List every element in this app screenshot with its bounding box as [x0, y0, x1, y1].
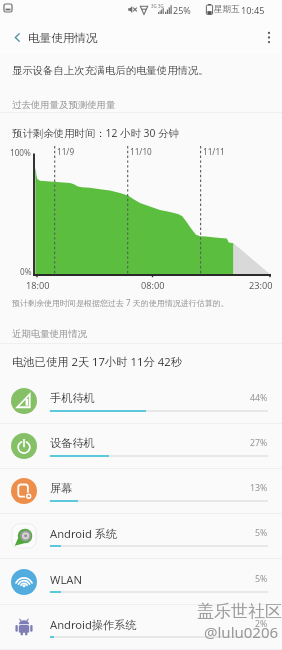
button[interactable]: 屏幕: [0, 468, 282, 513]
button[interactable]: Back: [4, 20, 30, 54]
staticText: 100%: [10, 147, 31, 158]
staticText: 11/10: [130, 146, 152, 157]
staticText: 预计剩余使用时间是根据您过去 7 天的使用情况进行估算的。: [12, 297, 229, 308]
staticText: 25%: [173, 4, 191, 16]
staticText: 过去使用量及预测使用量: [12, 99, 116, 111]
button[interactable]: Android 系统: [0, 513, 282, 558]
staticText: 近期电量使用情况: [12, 328, 88, 340]
staticText: 11/9: [57, 146, 75, 157]
staticText: 10:45: [241, 4, 265, 17]
staticText: 屏幕: [50, 481, 73, 495]
staticText: 11/11: [203, 146, 225, 157]
staticText: 08:00: [141, 279, 165, 292]
staticText: Android操作系统: [50, 617, 137, 632]
staticText: 13%: [250, 482, 268, 494]
staticText: 预计剩余使用时间：12 小时 30 分钟: [12, 126, 179, 140]
staticText: WLAN: [50, 572, 82, 587]
staticText: 电池已使用 2天 17小时 11分 42秒: [12, 354, 182, 369]
staticText: 27%: [250, 437, 268, 449]
staticText: @lulu0206: [204, 622, 279, 642]
staticText: 44%: [250, 392, 268, 404]
button[interactable]: 手机待机: [0, 378, 282, 423]
button[interactable]: WLAN: [0, 559, 282, 604]
button[interactable]: More options: [255, 20, 282, 54]
staticText: 3G: [158, 3, 164, 9]
staticText: Android 系统: [50, 526, 118, 541]
staticText: 23:00: [249, 279, 273, 292]
staticText: 2%: [255, 618, 268, 630]
button[interactable]: 设备待机: [0, 423, 282, 468]
staticText: 0%: [20, 266, 32, 277]
button[interactable]: Android操作系统: [0, 604, 282, 649]
staticText: 显示设备自上次充满电后的电量使用情况。: [12, 64, 209, 77]
staticText: 手机待机: [50, 391, 95, 405]
staticText: 18:00: [26, 279, 50, 292]
staticText: 设备待机: [50, 436, 95, 450]
staticText: 5%: [255, 527, 268, 539]
staticText: 3G: [151, 3, 157, 9]
staticText: 电量使用情况: [28, 31, 98, 46]
staticText: 星期五: [214, 4, 240, 15]
staticText: 盖乐世社区: [197, 601, 282, 622]
staticText: 5%: [255, 573, 268, 585]
